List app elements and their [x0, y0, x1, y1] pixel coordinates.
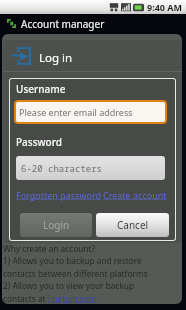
- button[interactable]: Please enter email address: [16, 102, 165, 122]
- button[interactable]: Forgotten password: [16, 189, 101, 201]
- staticText: Please enter email address: [19, 106, 133, 118]
- staticText: Account manager: [21, 17, 105, 31]
- staticText: 6-20 characters: [21, 162, 103, 174]
- button[interactable]: Login: [20, 213, 92, 237]
- staticText: Username: [16, 82, 66, 96]
- button[interactable]: Cancel: [96, 213, 169, 237]
- button[interactable]: Create account: [103, 189, 167, 201]
- staticText: Password: [16, 135, 62, 149]
- staticText: Why create an account?: [3, 243, 96, 254]
- button[interactable]: 6-20 characters: [16, 156, 165, 180]
- staticText: 1) Allows you to backup and restore: [3, 255, 142, 266]
- button[interactable]: i.netqin.com: [48, 293, 97, 304]
- staticText: Cancel: [117, 218, 149, 232]
- staticText: Login: [43, 218, 70, 232]
- other: Log in: [11, 47, 31, 65]
- staticText: contacts between different platforms: [3, 268, 148, 279]
- staticText: 9:40 AM: [147, 1, 183, 13]
- staticText: Log in: [39, 50, 73, 66]
- staticText: contacts at: [3, 293, 48, 304]
- staticText: 2) Allows you to view your backup: [3, 280, 135, 291]
